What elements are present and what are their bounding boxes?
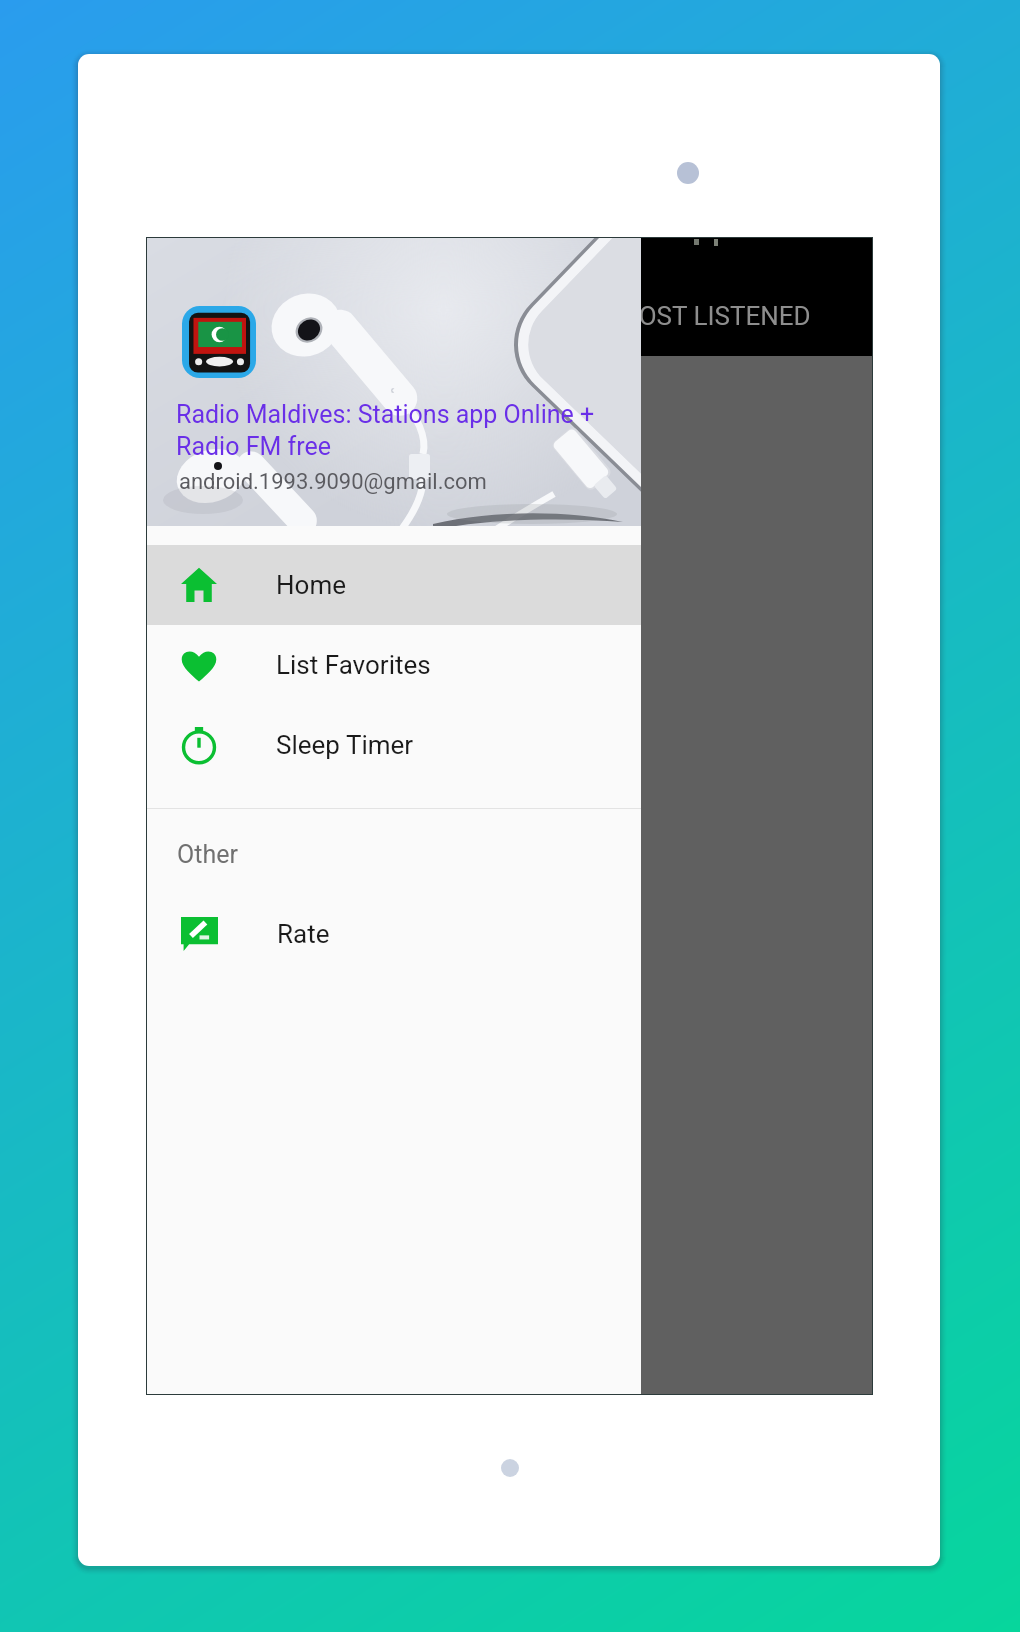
button[interactable]: Rate (147, 894, 641, 974)
staticText: android.1993.9090@gmail.com (179, 469, 487, 495)
staticText: MOST LISTENED (616, 301, 811, 331)
staticText: Home (276, 570, 346, 600)
button[interactable]: List Favorites (147, 625, 641, 705)
staticText: Sleep Timer (276, 730, 414, 760)
staticText: Rate (277, 919, 330, 949)
button[interactable]: Sleep Timer (147, 705, 641, 785)
button[interactable]: Home (147, 545, 641, 625)
button[interactable]: Radio Maldives: Stations app Online + Ra… (147, 238, 641, 526)
staticText: Other (177, 840, 238, 869)
staticText: List Favorites (276, 650, 431, 680)
staticText: Radio Maldives: Stations app Online + Ra… (176, 400, 601, 461)
